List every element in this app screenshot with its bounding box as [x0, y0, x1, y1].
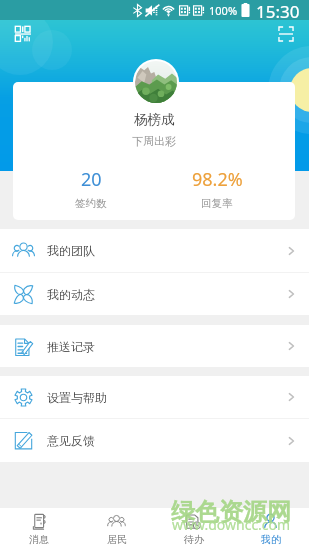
staticText: 居民: [107, 533, 127, 546]
staticText: 绿色资源网: [171, 497, 291, 527]
staticText: 我的团队: [47, 243, 95, 258]
staticText: 签约数: [75, 197, 107, 210]
staticText: 20: [81, 167, 102, 192]
button[interactable]: 意见反馈: [0, 419, 309, 462]
staticText: 98.2%: [192, 167, 243, 192]
staticText: 推送记录: [47, 339, 95, 354]
button[interactable]: 居民: [78, 508, 155, 550]
staticText: 100%: [209, 3, 238, 18]
staticText: 我的: [261, 533, 281, 546]
button[interactable]: Avatar: [135, 61, 177, 103]
button[interactable]: 我的: [232, 508, 309, 550]
button[interactable]: My QR code: [10, 23, 36, 45]
button[interactable]: Scan: [273, 23, 299, 45]
staticText: 我的动态: [47, 287, 95, 302]
button[interactable]: 消息: [0, 508, 78, 550]
staticText: www.downcc.com: [172, 515, 291, 534]
button[interactable]: 设置与帮助: [0, 376, 309, 418]
staticText: 杨榜成: [134, 111, 175, 128]
staticText: 待办: [184, 533, 204, 546]
staticText: 设置与帮助: [47, 390, 107, 405]
button[interactable]: 我的动态: [0, 273, 309, 315]
button[interactable]: 我的团队: [0, 229, 309, 272]
staticText: 下周出彩: [132, 134, 176, 148]
staticText: 回复率: [201, 197, 233, 210]
staticText: 意见反馈: [47, 433, 95, 448]
staticText: 消息: [29, 533, 49, 546]
button[interactable]: 待办: [155, 508, 232, 550]
staticText: 15:30: [256, 0, 300, 20]
button[interactable]: 推送记录: [0, 325, 309, 367]
